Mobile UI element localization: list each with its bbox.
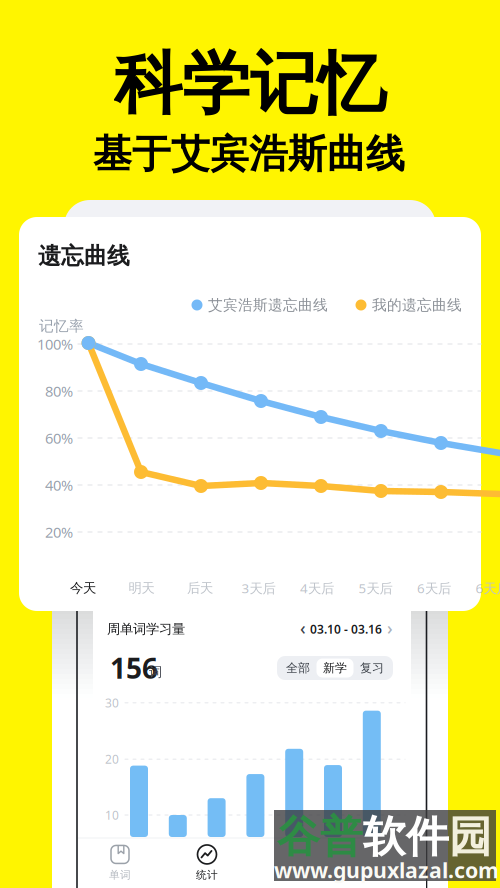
staticText: ‹ [300,616,306,639]
staticText: 6天后 [475,579,500,597]
staticText: 基于艾宾浩斯曲线 [93,130,405,178]
staticText: www.gupuxlazal.com [274,856,499,884]
staticText: 明天 [128,580,154,596]
staticText: 5天后 [358,579,392,597]
button[interactable]: 新学 [316,658,353,677]
staticText: 统计 [196,868,218,881]
staticText: 软件 [363,811,449,863]
staticText: 60% [45,428,73,448]
staticText: 100% [37,334,73,354]
staticText: 复习 [360,661,384,675]
staticText: 后天 [187,580,213,596]
staticText: 科学记忆 [114,42,386,126]
button[interactable]: 4天后 [292,576,342,600]
button[interactable]: ‹ [295,618,311,638]
button[interactable]: 6天后 [467,576,500,600]
staticText: 10 [105,807,119,823]
button[interactable]: 全部 [279,658,316,677]
staticText: 谷普 [277,811,363,863]
staticText: 全部 [286,661,310,675]
button[interactable]: 6天后 [409,576,459,600]
staticText: 30 [105,695,119,711]
staticText: 20 [105,751,119,767]
staticText: 6天后 [417,579,451,597]
staticText: 今天 [70,580,96,596]
staticText: 156 [110,649,158,687]
button[interactable]: 明天 [116,576,166,600]
button[interactable]: 复习 [353,658,390,677]
staticText: 我的遗忘曲线 [372,296,462,314]
button[interactable]: 统计 [172,841,242,885]
staticText: 40% [45,475,73,495]
staticText: 单词 [109,868,131,881]
staticText: 4天后 [300,579,334,597]
staticText: 新学 [323,661,347,675]
staticText: 3天后 [241,579,275,597]
button[interactable]: 今天 [58,576,108,600]
button[interactable]: 单词 [85,841,155,885]
button[interactable]: 5天后 [350,576,400,600]
staticText: 艾宾浩斯遗忘曲线 [208,296,328,314]
staticText: 20% [45,522,73,542]
button[interactable]: 后天 [175,576,225,600]
staticText: 记忆率 [39,317,84,335]
button[interactable]: › [382,618,398,638]
staticText: 03.10 - 03.16 [310,621,382,637]
staticText: 周单词学习量 [107,621,185,637]
staticText: 80% [45,381,73,401]
button[interactable]: 3天后 [233,576,283,600]
staticText: › [387,616,393,639]
staticText: 词 [149,664,162,680]
staticText: 遗忘曲线 [38,242,130,270]
staticText: 园 [449,811,492,863]
